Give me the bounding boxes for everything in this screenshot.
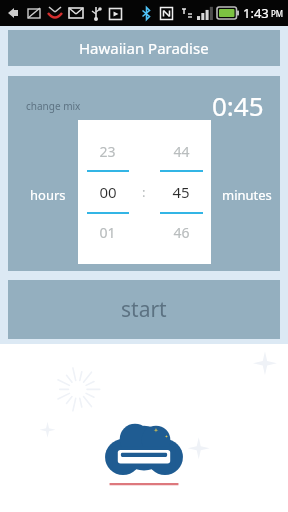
staticText: PM xyxy=(271,8,284,19)
button[interactable]: 44 xyxy=(151,120,211,264)
staticText: 00 xyxy=(99,182,117,202)
staticText: 46 xyxy=(173,223,190,242)
staticText: 1:43 xyxy=(243,4,269,22)
button[interactable]: Hawaiian Paradise xyxy=(8,30,280,66)
staticText: start xyxy=(121,295,167,324)
staticText: minutes xyxy=(222,186,272,204)
staticText: : xyxy=(142,183,146,201)
staticText: 45 xyxy=(172,182,190,202)
staticText: 0:45 xyxy=(212,88,264,123)
staticText: Hawaiian Paradise xyxy=(79,38,209,58)
button[interactable]: change mix xyxy=(26,99,81,113)
staticText: 23 xyxy=(99,142,116,161)
staticText: 01 xyxy=(99,223,116,242)
staticText: 44 xyxy=(173,142,190,161)
staticText: hours xyxy=(30,186,66,204)
button[interactable]: 23 xyxy=(78,120,137,264)
button[interactable]: start xyxy=(8,280,280,339)
